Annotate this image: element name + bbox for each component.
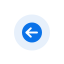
button[interactable]: Back xyxy=(14,14,50,50)
